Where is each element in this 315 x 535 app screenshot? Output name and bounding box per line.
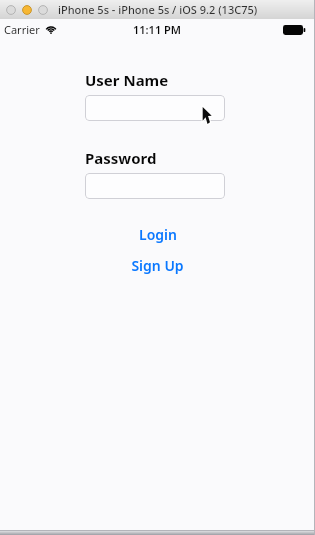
staticText: Password [85,148,157,168]
button[interactable]: Login [0,225,315,244]
button[interactable]: Sign Up [0,256,315,275]
staticText: iPhone 5s - iPhone 5s / iOS 9.2 (13C75) [58,2,258,17]
staticText: Sign Up [131,256,184,275]
button[interactable]: Minimize window [22,5,32,15]
staticText: Login [139,225,177,244]
staticText: Carrier [4,22,40,37]
staticText: User Name [85,70,169,90]
button[interactable]: Zoom window [38,5,48,15]
button[interactable] [85,95,225,121]
button[interactable]: Close window [6,5,16,15]
staticText: 11:11 PM [133,22,182,37]
button[interactable] [85,173,225,199]
